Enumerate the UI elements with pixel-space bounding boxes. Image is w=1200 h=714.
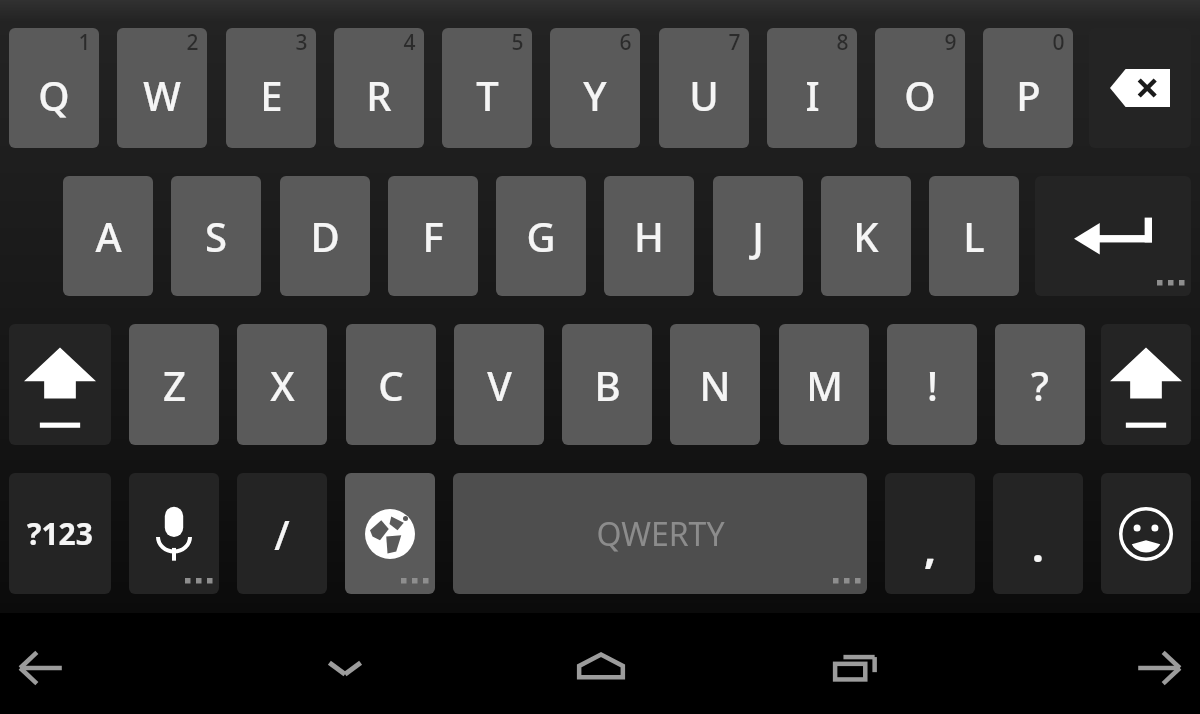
button[interactable]: Forward [1118,621,1200,714]
staticText: N [699,358,731,412]
button[interactable]: Comma [885,473,975,594]
staticText: 2 [186,28,199,57]
button[interactable]: W [117,28,207,148]
staticText: 7 [728,28,741,57]
button[interactable]: Shift [9,324,111,445]
staticText: S [205,209,227,263]
button[interactable]: Shift [1101,324,1191,445]
staticText: 5 [511,28,524,57]
button[interactable]: V [454,324,544,445]
button[interactable]: K [821,176,911,296]
staticText: H [634,209,664,263]
button[interactable]: A [63,176,153,296]
button[interactable]: Recents [813,621,903,714]
button[interactable]: O [875,28,965,148]
staticText: G [526,209,556,263]
staticText: QWERTY [596,512,725,556]
staticText: A [95,209,122,263]
button[interactable]: Enter [1035,176,1191,296]
staticText: B [594,358,621,412]
staticText: M [806,358,843,412]
staticText: 1 [78,28,91,57]
staticText: 8 [836,28,849,57]
button[interactable]: L [929,176,1019,296]
staticText: ?123 [27,513,93,554]
staticText: R [366,68,392,122]
button[interactable]: T [442,28,532,148]
button[interactable]: N [670,324,760,445]
button[interactable]: B [562,324,652,445]
staticText: , [924,519,936,576]
button[interactable]: H [604,176,694,296]
button[interactable]: Q [9,28,99,148]
button[interactable]: J [713,176,803,296]
staticText: Q [38,68,70,122]
button[interactable]: P [983,28,1073,148]
button[interactable]: F [388,176,478,296]
staticText: O [904,68,936,122]
staticText: E [260,68,283,122]
button[interactable]: Hide keyboard [303,621,387,714]
staticText: X [270,358,295,412]
button[interactable]: Voice input [129,473,219,594]
staticText: ? [1031,358,1049,412]
staticText: 4 [403,28,416,57]
staticText: T [476,68,499,122]
staticText: F [422,209,444,263]
button[interactable]: S [171,176,261,296]
staticText: 0 [1052,28,1065,57]
button[interactable]: Backspace [1089,28,1191,148]
staticText: J [752,209,764,263]
staticText: 3 [295,28,308,57]
button[interactable]: I [767,28,857,148]
button[interactable]: R [334,28,424,148]
staticText: C [378,358,404,412]
button[interactable]: C [346,324,436,445]
button[interactable]: Slash [237,473,327,594]
button[interactable]: Change language [345,473,435,594]
staticText: . [1032,517,1044,574]
button[interactable]: Symbols [9,473,111,594]
button[interactable]: Y [550,28,640,148]
button[interactable]: ! [887,324,977,445]
staticText: V [487,358,512,412]
staticText: Z [163,358,186,412]
staticText: Y [583,68,607,122]
button[interactable]: Emoji [1101,473,1191,594]
button[interactable]: Z [129,324,219,445]
button[interactable]: E [226,28,316,148]
staticText: D [310,209,340,263]
staticText: U [689,68,719,122]
button[interactable]: Home [557,621,645,714]
staticText: 6 [619,28,632,57]
staticText: / [274,507,290,561]
button[interactable]: U [659,28,749,148]
staticText: 9 [944,28,957,57]
button[interactable]: ? [995,324,1085,445]
button[interactable]: Back [0,621,82,714]
button[interactable]: Period [993,473,1083,594]
staticText: ! [927,358,938,412]
button[interactable]: D [280,176,370,296]
staticText: L [963,209,985,263]
staticText: P [1016,68,1041,122]
staticText: I [805,68,820,122]
button[interactable]: M [779,324,869,445]
staticText: W [143,68,181,122]
staticText: K [853,209,879,263]
button[interactable]: X [237,324,327,445]
button[interactable]: Space [453,473,867,594]
button[interactable]: G [496,176,586,296]
